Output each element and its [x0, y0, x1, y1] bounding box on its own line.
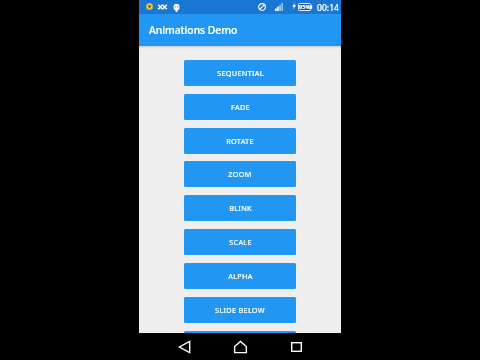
- staticText: 00:14: [317, 2, 339, 14]
- staticText: ROTATE: [226, 136, 254, 146]
- button[interactable]: ZOOM: [184, 161, 296, 187]
- staticText: ZOOM: [228, 169, 252, 179]
- button[interactable]: Back: [167, 333, 201, 360]
- button[interactable]: SLIDE ABOVE: [184, 331, 296, 357]
- button[interactable]: Home: [223, 333, 257, 360]
- staticText: Animations Demo: [149, 23, 238, 37]
- button[interactable]: SEQUENTIAL: [184, 60, 296, 86]
- button[interactable]: Recent apps: [279, 333, 313, 360]
- button[interactable]: FADE: [184, 94, 296, 120]
- staticText: FADE: [231, 102, 250, 112]
- staticText: SLIDE BELOW: [215, 305, 265, 315]
- button[interactable]: SCALE: [184, 229, 296, 255]
- button[interactable]: ALPHA: [184, 263, 296, 289]
- button[interactable]: BLINK: [184, 195, 296, 221]
- staticText: SLIDE ABOVE: [216, 339, 265, 349]
- staticText: SCALE: [229, 237, 252, 247]
- staticText: ALPHA: [228, 271, 253, 281]
- staticText: SEQUENTIAL: [217, 68, 264, 78]
- staticText: BLINK: [229, 203, 252, 213]
- staticText: 95%: [299, 3, 311, 11]
- button[interactable]: SLIDE BELOW: [184, 297, 296, 323]
- button[interactable]: ROTATE: [184, 128, 296, 154]
